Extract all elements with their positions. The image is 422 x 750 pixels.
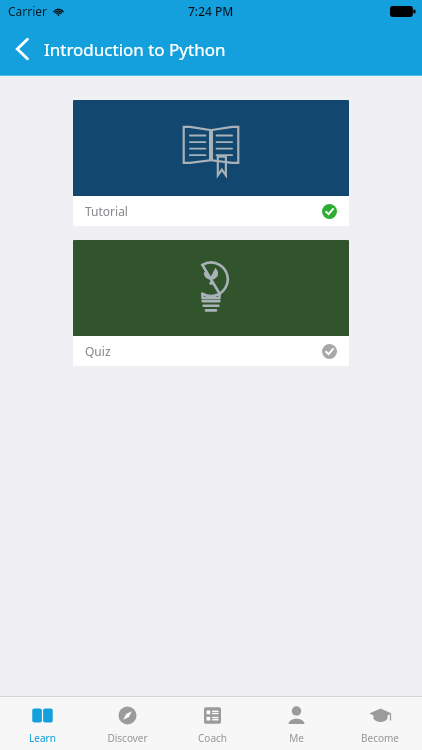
button[interactable]: Discover <box>85 697 170 750</box>
staticText: Carrier <box>8 3 48 19</box>
staticText: Become <box>361 731 399 745</box>
button[interactable]: Quiz <box>73 240 349 366</box>
staticText: Quiz <box>85 343 111 359</box>
button[interactable]: Learn <box>0 697 85 750</box>
staticText: Learn <box>29 731 56 745</box>
staticText: Introduction to Python <box>44 38 226 61</box>
button[interactable]: Coach <box>170 697 254 750</box>
button[interactable]: Back <box>0 22 44 76</box>
staticText: Discover <box>107 731 148 745</box>
staticText: 7:24 PM <box>188 3 234 19</box>
button[interactable]: Become <box>338 697 422 750</box>
staticText: Me <box>289 731 304 745</box>
staticText: Tutorial <box>85 203 128 219</box>
button[interactable]: Tutorial <box>73 100 349 226</box>
button[interactable]: Me <box>254 697 338 750</box>
staticText: Coach <box>198 731 227 745</box>
